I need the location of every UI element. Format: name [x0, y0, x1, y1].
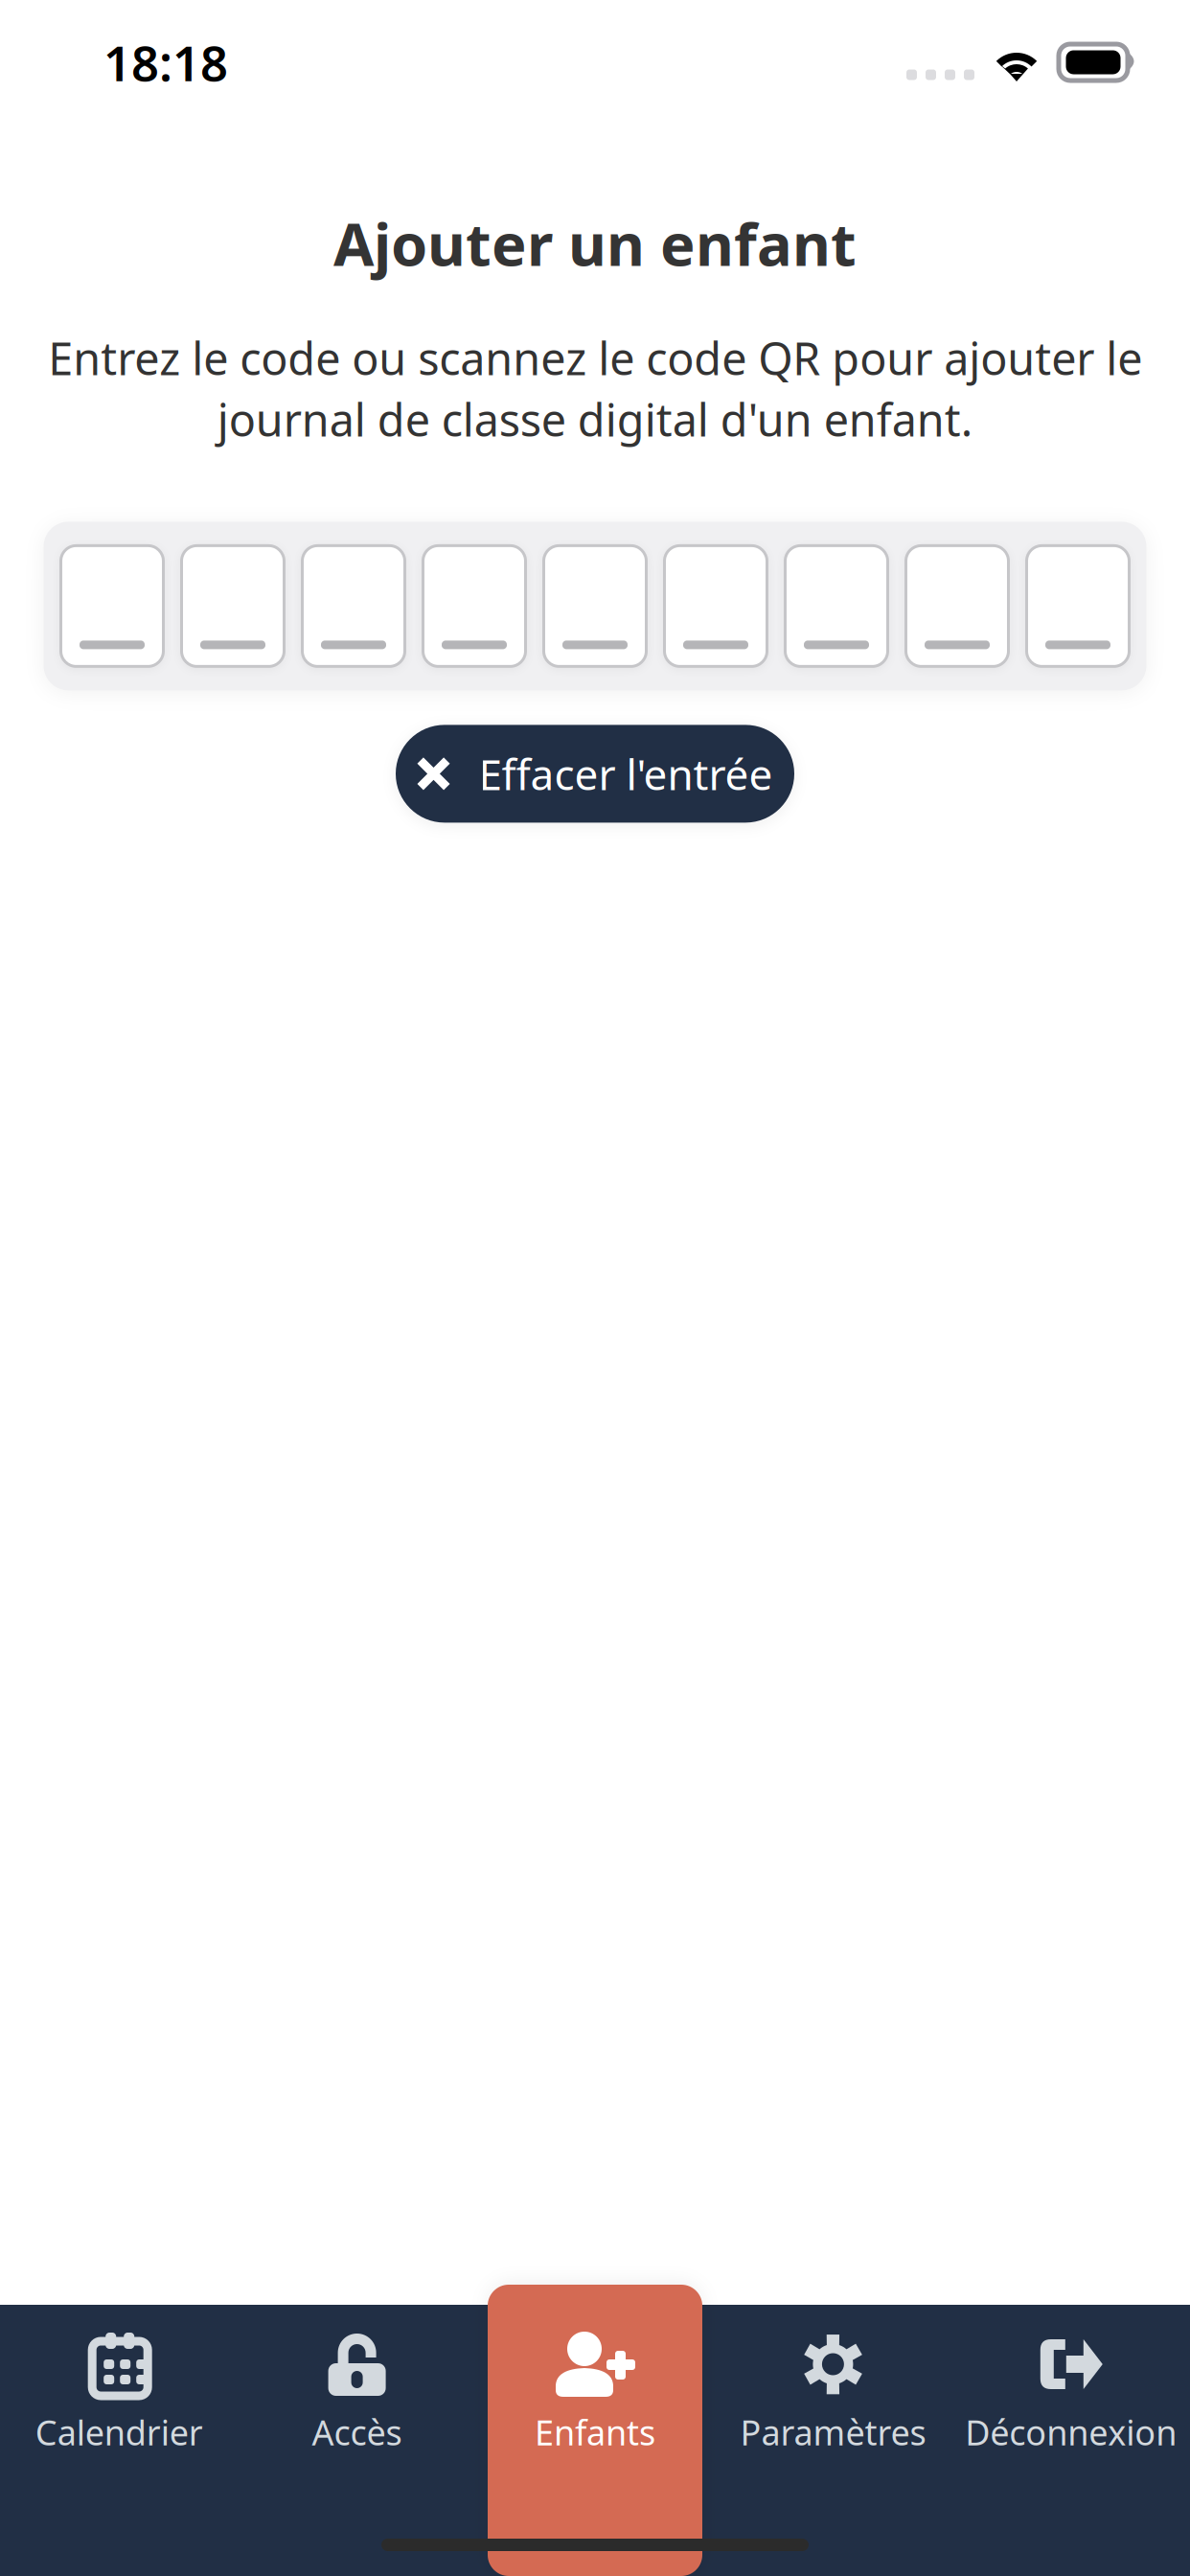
button[interactable]: Calendrier	[0, 2285, 238, 2576]
staticText: Enfants	[535, 2409, 655, 2455]
staticText: Ajouter un enfant	[333, 204, 857, 282]
button[interactable]: Chiffre 8	[906, 546, 1008, 666]
button[interactable]: Chiffre 5	[544, 546, 646, 666]
button[interactable]: Chiffre 1	[61, 546, 163, 666]
staticText: Accès	[312, 2409, 402, 2455]
button[interactable]: Paramètres	[714, 2285, 952, 2576]
button[interactable]: Effacer l'entrée	[396, 725, 794, 823]
staticText: Calendrier	[35, 2409, 203, 2455]
button[interactable]: Chiffre 3	[302, 546, 405, 666]
staticText: Entrez le code ou scannez le code QR pou…	[48, 328, 1142, 449]
button[interactable]: Chiffre 7	[785, 546, 888, 666]
button[interactable]: Chiffre 9	[1027, 546, 1129, 666]
staticText: Déconnexion	[965, 2409, 1177, 2455]
button[interactable]: Chiffre 6	[664, 546, 767, 666]
staticText: Effacer l'entrée	[479, 746, 773, 802]
button[interactable]: Enfants	[476, 2285, 714, 2576]
staticText: Paramètres	[740, 2409, 926, 2455]
button[interactable]: Déconnexion	[952, 2285, 1190, 2576]
button[interactable]: Chiffre 4	[423, 546, 526, 666]
button[interactable]: Accès	[238, 2285, 476, 2576]
staticText: 18:18	[103, 30, 228, 95]
button[interactable]: Chiffre 2	[182, 546, 284, 666]
